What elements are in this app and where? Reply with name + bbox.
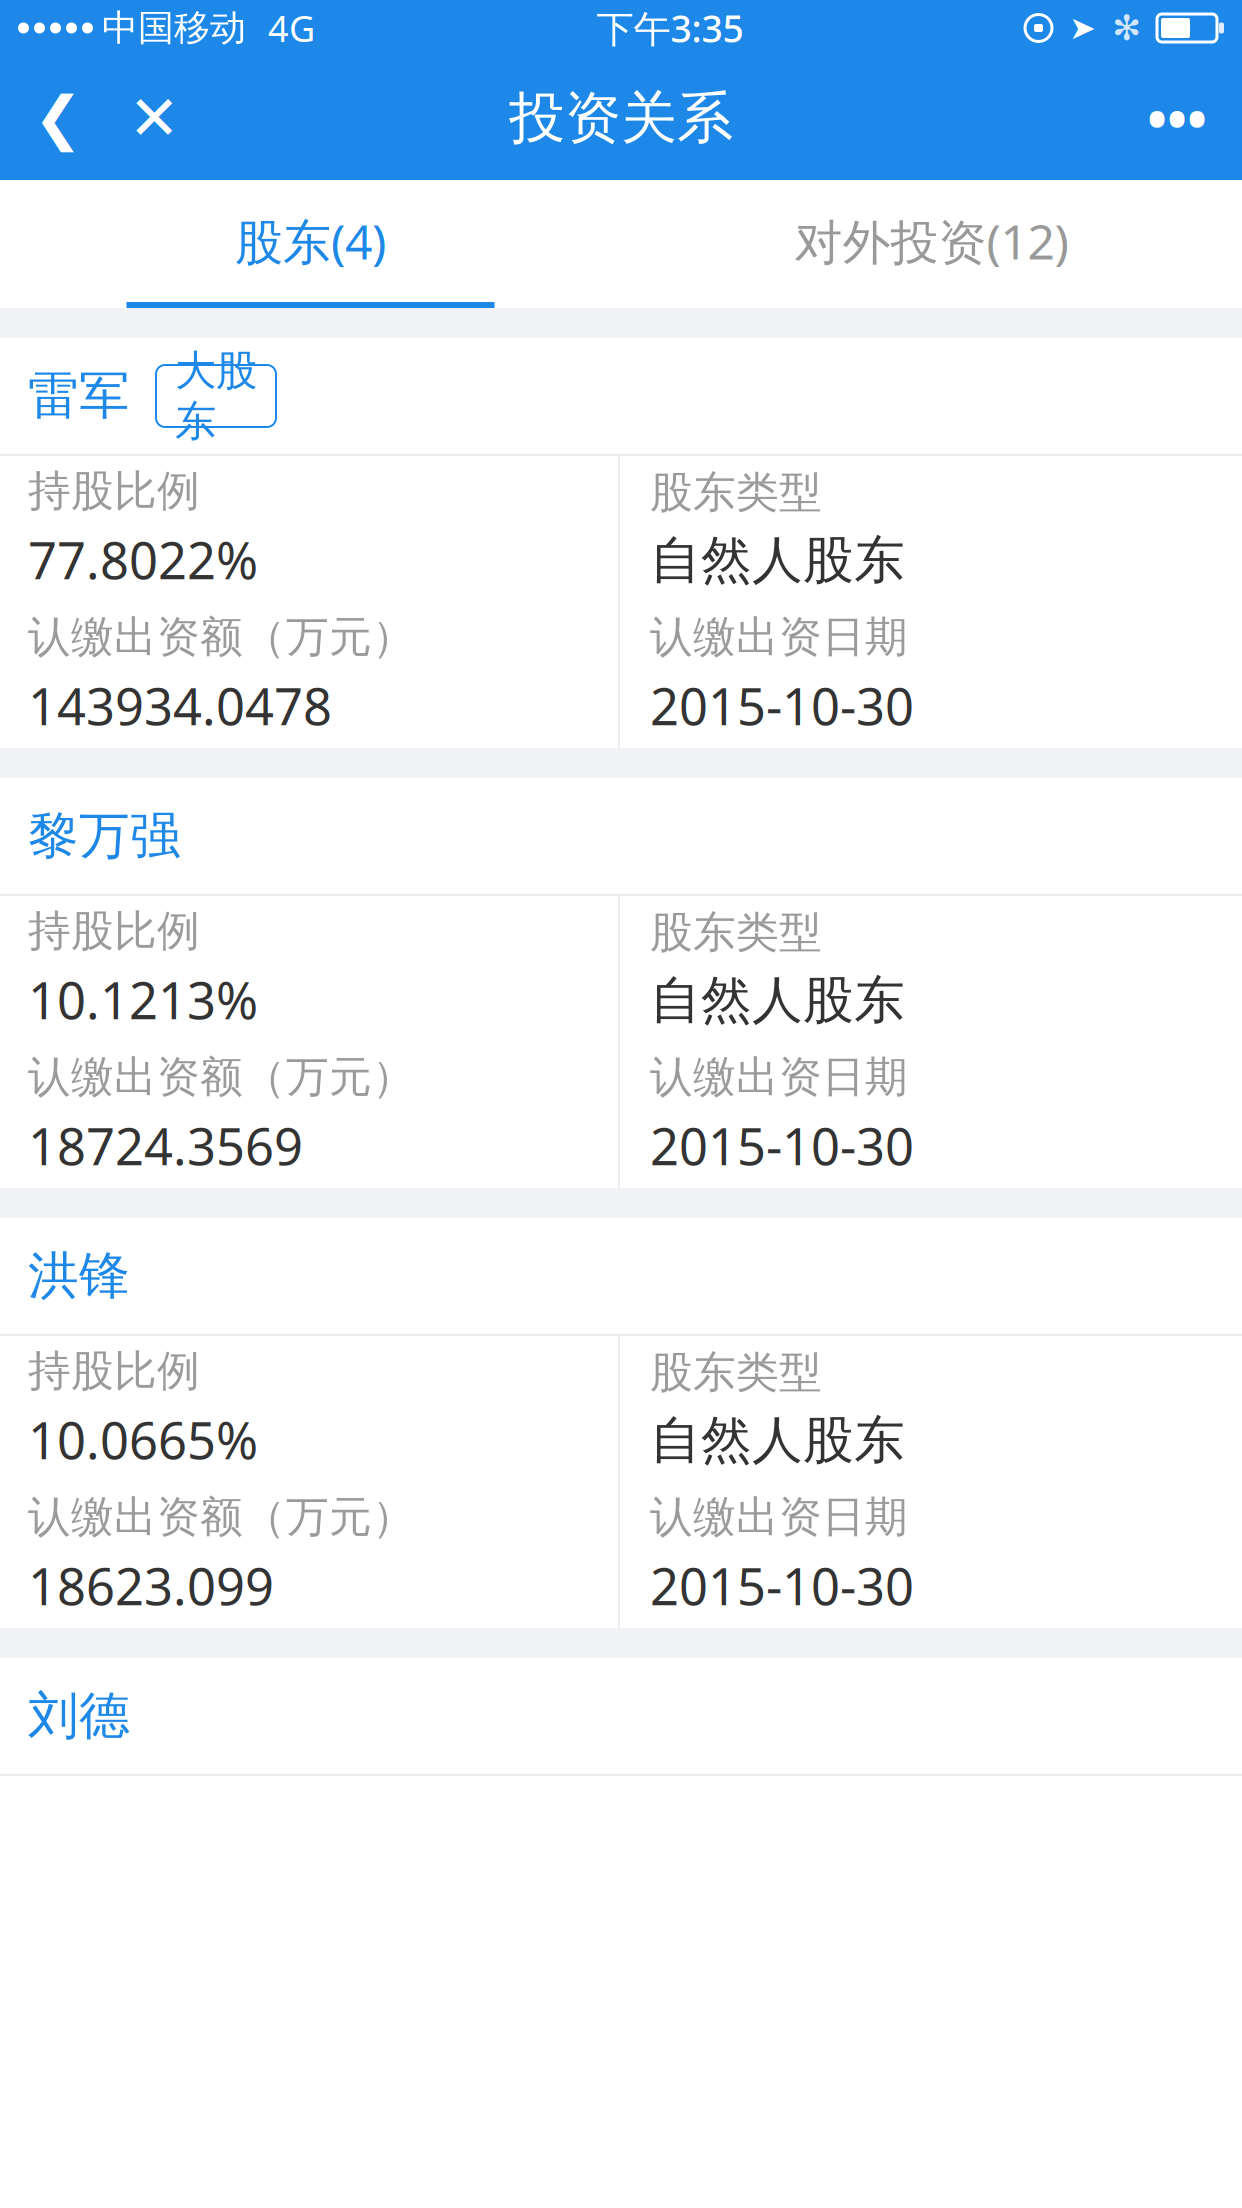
staticText: 持股比例	[28, 905, 200, 957]
staticText: 10.1213%	[28, 966, 258, 1033]
staticText: 10.0665%	[28, 1406, 258, 1473]
staticText: 认缴出资额（万元）	[28, 1491, 415, 1543]
staticText: 2015-10-30	[650, 1552, 914, 1619]
button[interactable]: 黎万强	[0, 778, 1242, 1188]
button[interactable]: 雷军	[0, 338, 1242, 748]
staticText: 中国移动	[102, 6, 246, 50]
staticText: 77.8022%	[28, 526, 258, 593]
staticText: 刘德	[28, 1685, 130, 1747]
button[interactable]: 更多	[1122, 56, 1232, 180]
staticText: 股东类型	[650, 906, 822, 959]
staticText: 认缴出资额（万元）	[28, 611, 415, 663]
button[interactable]: 返回	[10, 56, 106, 180]
button[interactable]: 关闭	[106, 56, 202, 180]
staticText: 持股比例	[28, 465, 200, 517]
staticText: 认缴出资日期	[650, 611, 908, 663]
button[interactable]: 刘德	[0, 1658, 1242, 1922]
staticText: 2015-10-30	[650, 1112, 914, 1179]
staticText: 投资关系	[509, 84, 733, 152]
staticText: 自然人股东	[650, 969, 905, 1031]
staticText: 大股东	[175, 345, 257, 447]
staticText: 洪锋	[28, 1245, 130, 1307]
staticText: 认缴出资额（万元）	[28, 1051, 415, 1103]
staticText: ➤	[1069, 10, 1096, 46]
button[interactable]: 股东(4)	[0, 180, 621, 308]
staticText: 股东类型	[650, 1346, 822, 1399]
staticText: 对外投资(12)	[794, 209, 1068, 273]
staticText: 2015-10-30	[650, 672, 914, 739]
button[interactable]: 对外投资(12)	[621, 180, 1242, 308]
staticText: 18623.099	[28, 1552, 274, 1619]
staticText: •••	[1147, 83, 1207, 153]
staticText: 18724.3569	[28, 1112, 303, 1179]
staticText: 股东类型	[650, 466, 822, 519]
staticText: ✻	[1112, 8, 1141, 48]
staticText: 143934.0478	[28, 672, 332, 739]
staticText: 自然人股东	[650, 1409, 905, 1471]
staticText: 自然人股东	[650, 529, 905, 591]
staticText: 4G	[268, 4, 315, 52]
staticText: 下午3:35	[596, 3, 743, 53]
staticText: 持股比例	[28, 1345, 200, 1397]
staticText: ✕	[128, 83, 179, 153]
staticText: 认缴出资日期	[650, 1491, 908, 1543]
staticText: ❮	[33, 85, 82, 151]
staticText: 黎万强	[28, 805, 181, 867]
staticText: 认缴出资日期	[650, 1051, 908, 1103]
staticText: 雷军	[28, 365, 130, 427]
button[interactable]: 洪锋	[0, 1218, 1242, 1628]
staticText: 股东(4)	[235, 209, 386, 273]
